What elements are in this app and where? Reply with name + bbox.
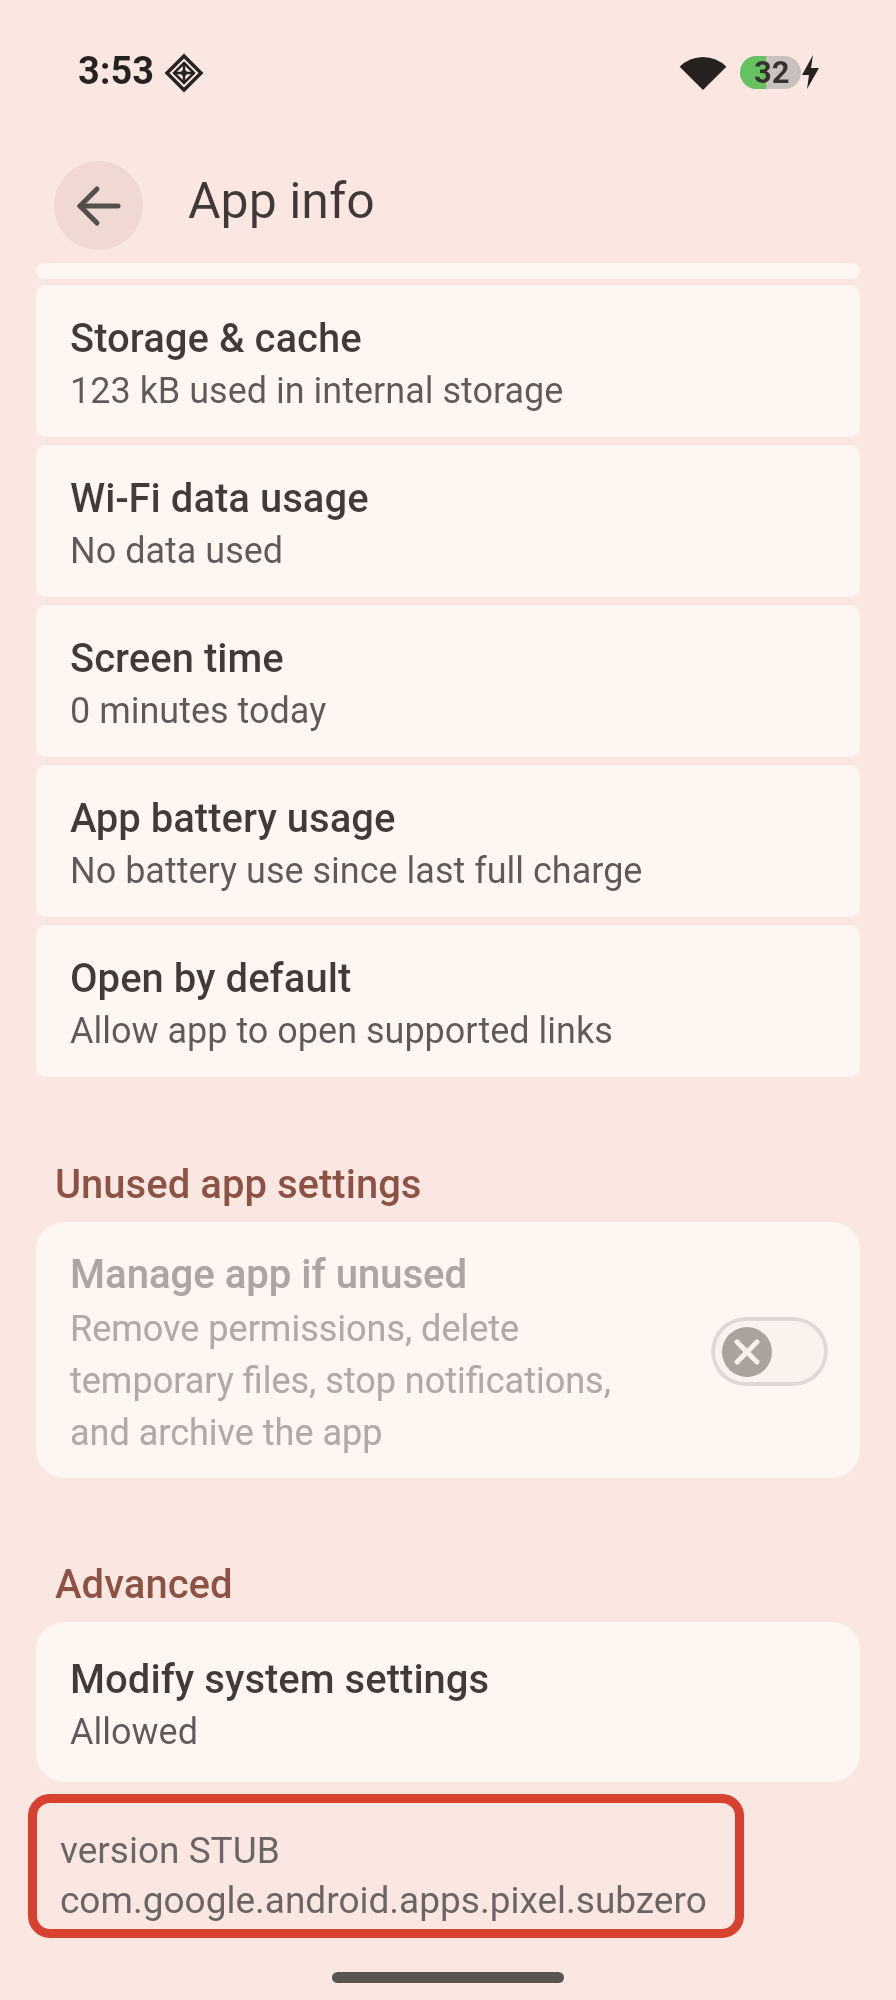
staticText: 0 minutes today — [70, 690, 327, 732]
staticText: Manage app if unused — [70, 1251, 468, 1298]
button[interactable]: Open by default — [36, 925, 860, 1077]
staticText: Allow app to open supported links — [70, 1010, 613, 1052]
button[interactable]: Modify system settings — [36, 1622, 860, 1782]
button[interactable] — [54, 161, 143, 250]
staticText: 3:53 — [78, 49, 155, 94]
staticText: Open by default — [70, 955, 352, 1002]
button[interactable]: Storage & cache — [36, 285, 860, 437]
staticText: Unused app settings — [55, 1161, 422, 1208]
staticText: version STUB — [60, 1829, 280, 1872]
button[interactable]: Manage app if unused — [36, 1222, 860, 1478]
staticText: No data used — [70, 530, 284, 572]
button[interactable]: Screen time — [36, 605, 860, 757]
button[interactable]: Wi-Fi data usage — [36, 445, 860, 597]
staticText: Remove permissions, delete temporary fil… — [70, 1308, 611, 1454]
staticText: Storage & cache — [70, 315, 362, 362]
staticText: Allowed — [70, 1711, 198, 1753]
staticText: 32 — [754, 54, 790, 90]
staticText: Screen time — [70, 635, 284, 682]
button[interactable]: App battery usage — [36, 765, 860, 917]
staticText: 123 kB used in internal storage — [70, 370, 564, 412]
staticText: com.google.android.apps.pixel.subzero — [60, 1879, 707, 1922]
staticText: Wi-Fi data usage — [70, 475, 369, 522]
staticText: Modify system settings — [70, 1656, 490, 1703]
staticText: No battery use since last full charge — [70, 850, 643, 892]
staticText: Advanced — [55, 1561, 233, 1608]
button[interactable] — [711, 1317, 828, 1386]
staticText: App battery usage — [70, 795, 396, 842]
staticText: App info — [188, 172, 375, 231]
